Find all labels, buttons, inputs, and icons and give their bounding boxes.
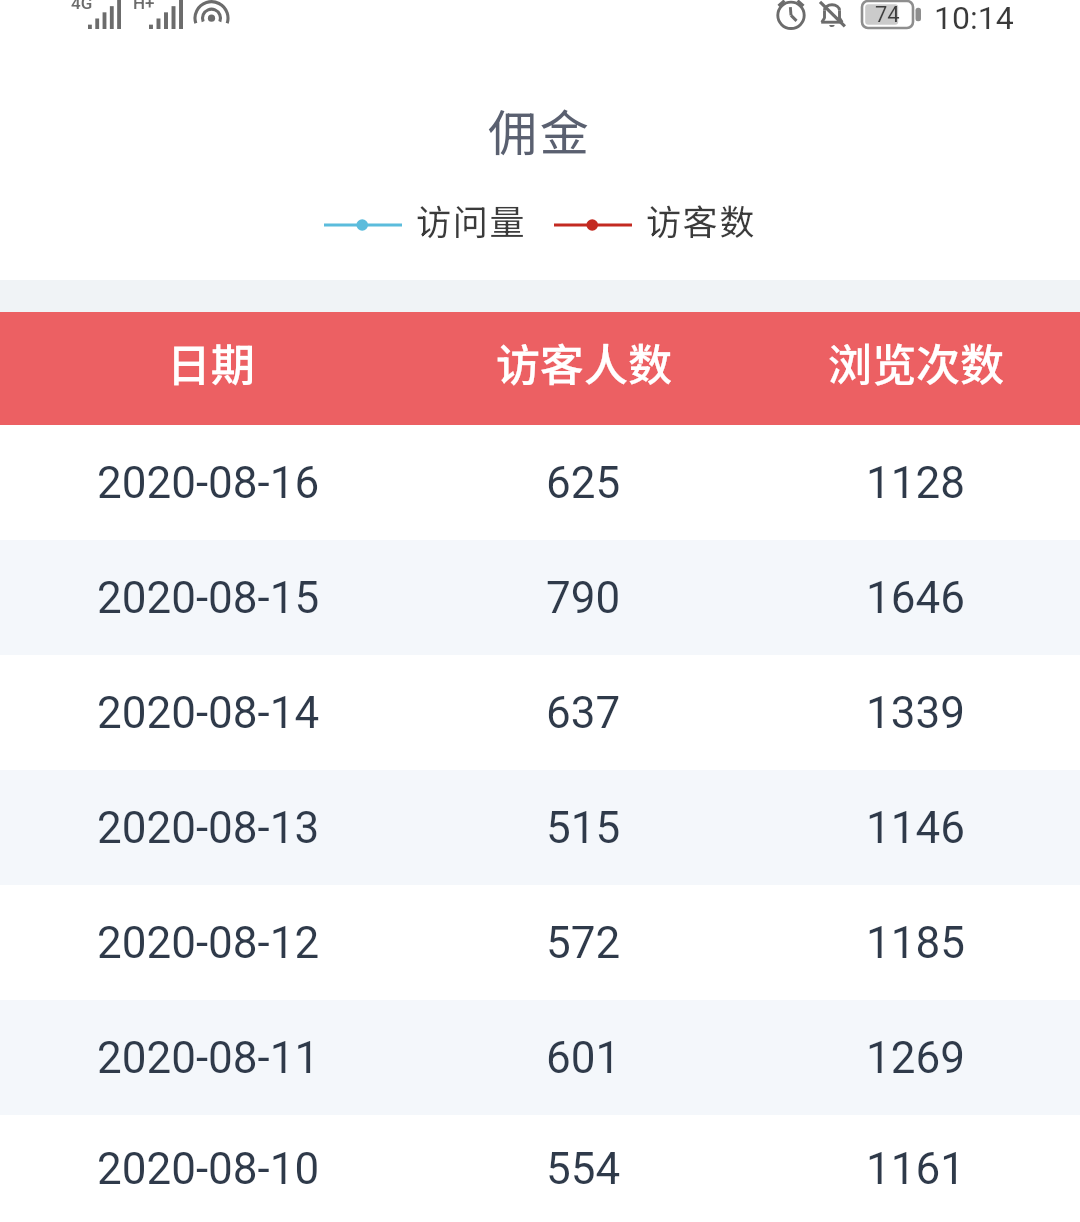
staticText: 2020-08-13 <box>97 802 320 854</box>
staticText: 790 <box>546 572 621 624</box>
staticText: 1161 <box>866 1143 965 1195</box>
button[interactable]: 访客数 <box>554 194 757 245</box>
other: Notifications muted <box>817 0 847 30</box>
staticText: 1339 <box>866 687 965 739</box>
staticText: 4G <box>71 0 93 13</box>
staticText: 浏览次数 <box>828 330 1004 394</box>
other: Alarm <box>776 0 806 29</box>
button[interactable]: 2020-08-14 <box>0 655 1080 770</box>
staticText: 日期 <box>167 330 255 394</box>
staticText: 1185 <box>866 917 965 969</box>
staticText: 访问量 <box>416 194 527 245</box>
button[interactable]: 浏览次数 <box>751 337 1080 401</box>
other: Hotspot <box>193 0 230 29</box>
staticText: 637 <box>546 687 621 739</box>
staticText: 访客人数 <box>496 330 672 394</box>
staticText: 572 <box>546 917 621 969</box>
staticText: 10:14 <box>934 0 1014 37</box>
button[interactable]: 2020-08-16 <box>0 425 1080 540</box>
button[interactable]: 2020-08-15 <box>0 540 1080 655</box>
staticText: 625 <box>546 457 621 509</box>
button[interactable]: 访客人数 <box>416 337 751 401</box>
button[interactable]: 2020-08-11 <box>0 1000 1080 1115</box>
staticText: H+ <box>133 0 155 13</box>
staticText: 佣金 <box>0 94 1080 165</box>
button[interactable]: 2020-08-12 <box>0 885 1080 1000</box>
staticText: 2020-08-14 <box>97 687 320 739</box>
button[interactable]: 日期 <box>0 337 416 401</box>
staticText: 1128 <box>866 457 965 509</box>
button[interactable]: 2020-08-10 <box>0 1115 1080 1222</box>
staticText: 1146 <box>866 802 965 854</box>
staticText: 2020-08-15 <box>97 572 320 624</box>
staticText: 515 <box>546 802 621 854</box>
staticText: 2020-08-10 <box>97 1143 320 1195</box>
button[interactable]: 访问量 <box>324 194 527 245</box>
staticText: 601 <box>546 1032 621 1084</box>
staticText: 1646 <box>866 572 965 624</box>
staticText: 2020-08-16 <box>97 457 320 509</box>
staticText: 1269 <box>866 1032 965 1084</box>
staticText: 74 <box>875 2 900 28</box>
button[interactable]: 2020-08-13 <box>0 770 1080 885</box>
staticText: 554 <box>546 1143 621 1195</box>
staticText: 2020-08-12 <box>97 917 320 969</box>
staticText: 2020-08-11 <box>97 1032 320 1084</box>
staticText: 访客数 <box>646 194 757 245</box>
